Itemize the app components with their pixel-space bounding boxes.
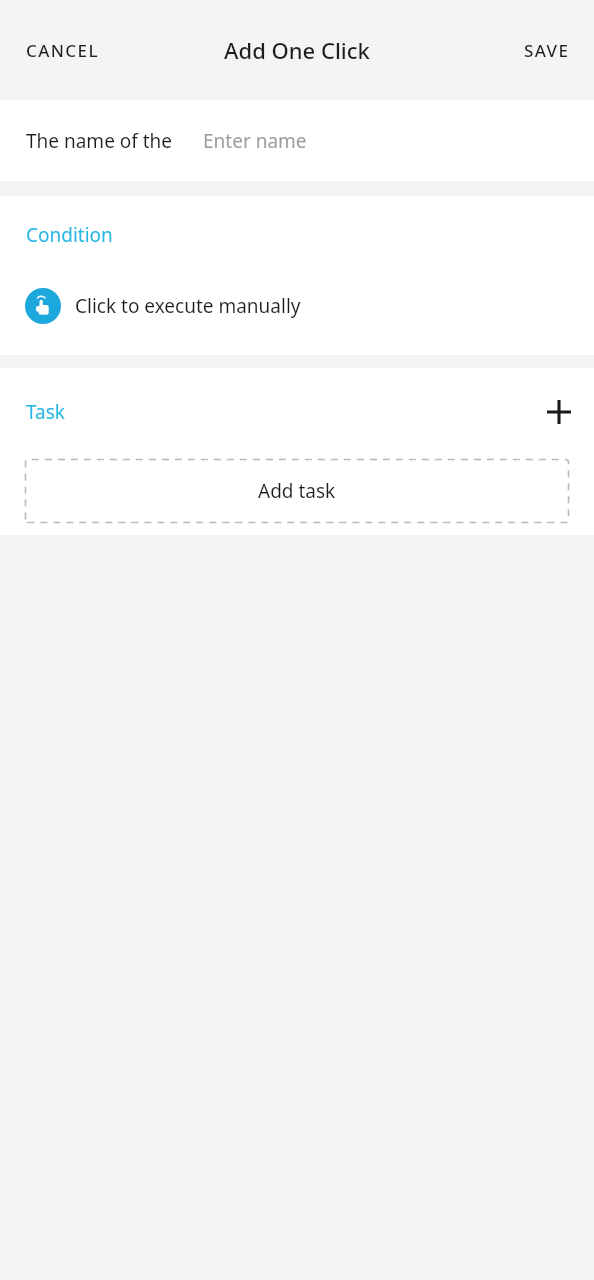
button[interactable]: Add task — [25, 459, 569, 523]
staticText: Add One Click — [224, 35, 370, 65]
other: Manual trigger — [25, 288, 61, 324]
staticText: Click to execute manually — [75, 293, 301, 319]
staticText: Add task — [258, 478, 336, 504]
staticText: The name of the — [26, 128, 173, 154]
staticText: Enter name — [203, 128, 307, 154]
button[interactable]: Add — [537, 390, 581, 434]
button[interactable]: The name of the — [0, 100, 594, 181]
button[interactable]: Manual trigger — [0, 280, 594, 332]
staticText: Condition — [26, 222, 113, 248]
staticText: CANCEL — [26, 39, 99, 62]
staticText: Task — [26, 399, 65, 425]
button[interactable]: SAVE — [504, 20, 594, 80]
button[interactable]: CANCEL — [0, 20, 119, 80]
staticText: SAVE — [524, 39, 570, 62]
